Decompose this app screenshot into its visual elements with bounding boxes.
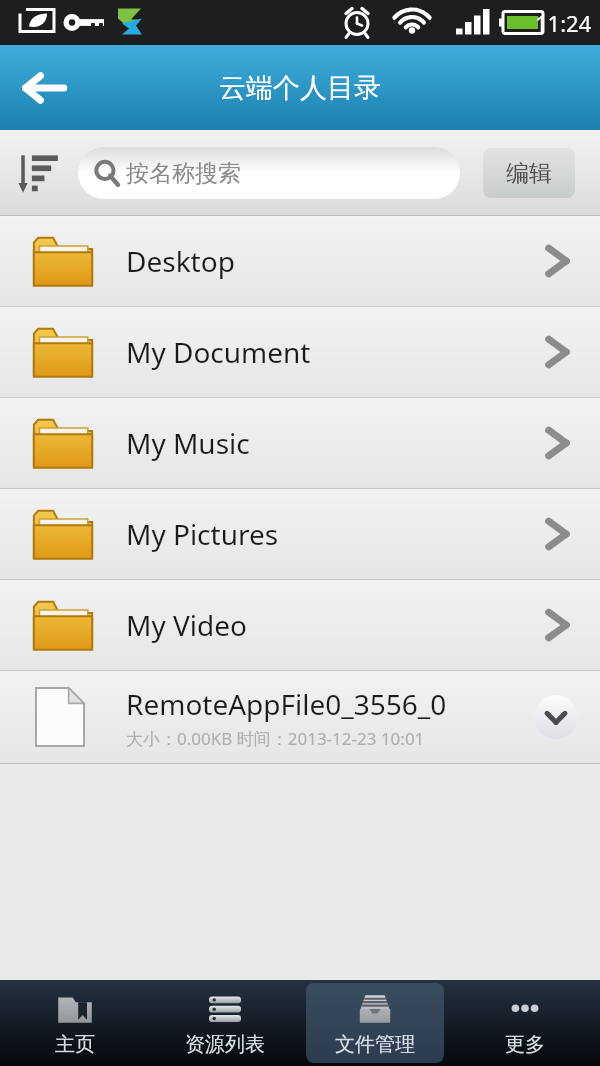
staticText: 大小：0.00KB 时间：2013-12-23 10:01 <box>126 727 425 750</box>
staticText: RemoteAppFile0_3556_0 <box>126 685 447 723</box>
button[interactable]: 主页 <box>6 983 144 1063</box>
staticText: 按名称搜索 <box>126 159 241 188</box>
staticText: My Music <box>126 424 250 462</box>
button[interactable]: My Music <box>0 398 600 488</box>
button[interactable]: My Document <box>0 307 600 397</box>
button[interactable]: 更多 <box>456 983 594 1063</box>
button[interactable]: 文件管理 <box>306 983 444 1063</box>
button[interactable]: 按名称搜索 <box>78 147 460 199</box>
staticText: 资源列表 <box>185 1032 265 1057</box>
staticText: My Pictures <box>126 515 279 553</box>
button[interactable]: 资源列表 <box>156 983 294 1063</box>
staticText: 主页 <box>55 1032 95 1057</box>
staticText: Desktop <box>126 242 235 280</box>
button[interactable]: Back <box>0 45 88 130</box>
staticText: 文件管理 <box>335 1032 415 1057</box>
button[interactable]: 编辑 <box>483 148 575 198</box>
button[interactable]: My Video <box>0 580 600 670</box>
staticText: 云端个人目录 <box>219 71 381 105</box>
button[interactable]: My Pictures <box>0 489 600 579</box>
staticText: 11:24 <box>535 8 592 38</box>
button[interactable]: RemoteAppFile0_3556_0 <box>0 671 600 763</box>
staticText: My Document <box>126 333 311 371</box>
button[interactable]: More options <box>534 695 578 739</box>
staticText: My Video <box>126 606 247 644</box>
button[interactable]: Desktop <box>0 216 600 306</box>
staticText: 更多 <box>505 1032 545 1057</box>
button[interactable]: Sort <box>4 138 74 208</box>
staticText: 编辑 <box>506 159 552 188</box>
